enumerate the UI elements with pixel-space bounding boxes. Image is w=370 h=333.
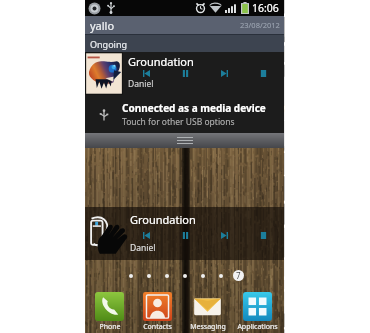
staticText: 23/08/2012	[240, 20, 280, 30]
button[interactable]: Phone	[87, 291, 132, 332]
button[interactable]: Contacts	[135, 291, 180, 332]
staticText: Daniel	[128, 78, 154, 90]
staticText: Messaging	[190, 322, 226, 332]
button[interactable]: Applications	[235, 291, 280, 332]
staticText: Ongoing	[90, 38, 127, 50]
button[interactable]: Page 7	[233, 270, 244, 281]
button[interactable]: Previous	[138, 228, 154, 242]
button[interactable]: Previous	[138, 66, 154, 80]
button[interactable]: Next	[216, 66, 232, 80]
button[interactable]: Next	[216, 228, 232, 242]
staticText: 7	[236, 270, 241, 281]
staticText: Groundation	[130, 212, 196, 227]
button[interactable]: Pause	[177, 228, 193, 242]
button[interactable]: Messaging	[185, 291, 230, 332]
button[interactable]: Close notification shade	[85, 133, 284, 148]
button[interactable]: Page 4	[179, 270, 190, 281]
button[interactable]: Page 3	[161, 270, 172, 281]
button[interactable]: Page 6	[215, 270, 226, 281]
staticText: Contacts	[143, 322, 172, 332]
button[interactable]: Stop	[255, 66, 271, 80]
button[interactable]: Page 2	[143, 270, 154, 281]
staticText: Applications	[237, 322, 278, 332]
button[interactable]: Page 1	[125, 270, 136, 281]
button[interactable]: Page 5	[197, 270, 208, 281]
staticText: Groundation	[128, 54, 194, 69]
staticText: Phone	[99, 322, 121, 332]
staticText: Connected as a media device	[122, 101, 266, 115]
button[interactable]: Stop	[255, 228, 271, 242]
button[interactable]: Connected as a media device	[85, 96, 284, 133]
button[interactable]: Pause	[177, 66, 193, 80]
staticText: Touch for other USB options	[122, 116, 235, 128]
staticText: Daniel	[130, 242, 156, 254]
staticText: 16:06	[252, 1, 279, 15]
staticText: yallo	[90, 18, 115, 33]
